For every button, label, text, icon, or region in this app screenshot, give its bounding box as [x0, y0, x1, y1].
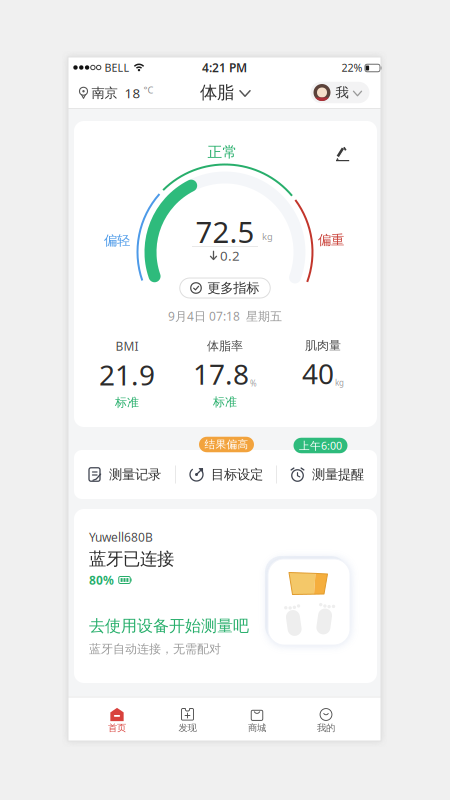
staticText: kg	[262, 230, 273, 243]
staticText: 首页	[108, 722, 126, 734]
staticText: 17.8	[193, 355, 249, 393]
button[interactable]: 我的	[291, 696, 361, 741]
staticText: 偏重	[318, 232, 344, 248]
button[interactable]: 我的账户	[310, 82, 369, 103]
staticText: 结果偏高	[204, 438, 248, 451]
staticText: kg	[335, 377, 344, 388]
staticText: 体脂率	[207, 339, 243, 353]
staticText: 南京	[91, 85, 117, 101]
staticText: 蓝牙自动连接，无需配对	[89, 642, 221, 656]
staticText: %	[250, 378, 257, 389]
staticText: 体脂	[200, 82, 234, 103]
button[interactable]: 目标设定	[176, 450, 276, 499]
button[interactable]: 编辑	[335, 145, 351, 162]
staticText: 80%	[89, 572, 114, 588]
staticText: 目标设定	[211, 466, 263, 483]
staticText: 9月4日 07:18 星期五	[168, 308, 282, 324]
staticText: 0.2	[220, 247, 240, 264]
button[interactable]: 体脂	[200, 82, 250, 103]
staticText: 测量提醒	[312, 466, 364, 483]
staticText: 标准	[213, 395, 237, 409]
staticText: 40	[302, 355, 334, 392]
button[interactable]: 更多指标	[180, 278, 270, 298]
staticText: 发现	[178, 722, 196, 734]
staticText: 我的	[317, 722, 335, 734]
staticText: 18	[124, 84, 140, 102]
staticText: 去使用设备开始测量吧	[89, 616, 249, 636]
button[interactable]: Yuwell680B	[74, 509, 377, 683]
staticText: 偏轻	[104, 232, 130, 249]
staticText: 上午6:00	[299, 438, 342, 453]
button[interactable]: 测量记录	[74, 450, 175, 499]
staticText: 21.9	[99, 356, 155, 393]
staticText: Yuwell680B	[89, 529, 153, 545]
staticText: 标准	[115, 395, 139, 410]
staticText: 商城	[248, 722, 266, 734]
staticText: 测量记录	[109, 466, 161, 483]
staticText: 22%	[341, 60, 362, 75]
button[interactable]: 首页	[82, 696, 152, 741]
staticText: 72.5	[195, 212, 254, 251]
button[interactable]: 商城	[222, 696, 292, 741]
staticText: 4:21 PM	[202, 59, 247, 75]
staticText: 肌肉量	[305, 338, 341, 353]
button[interactable]: 测量提醒	[277, 450, 377, 499]
staticText: 我	[335, 84, 348, 101]
button[interactable]: 发现	[152, 696, 222, 741]
staticText: 更多指标	[207, 280, 259, 296]
staticText: 蓝牙已连接	[89, 548, 174, 570]
staticText: 正常	[207, 143, 237, 161]
staticText: BELL	[104, 60, 129, 75]
staticText: BMI	[115, 338, 138, 354]
button[interactable]: 选择城市	[78, 84, 153, 102]
staticText: °C	[143, 84, 153, 96]
